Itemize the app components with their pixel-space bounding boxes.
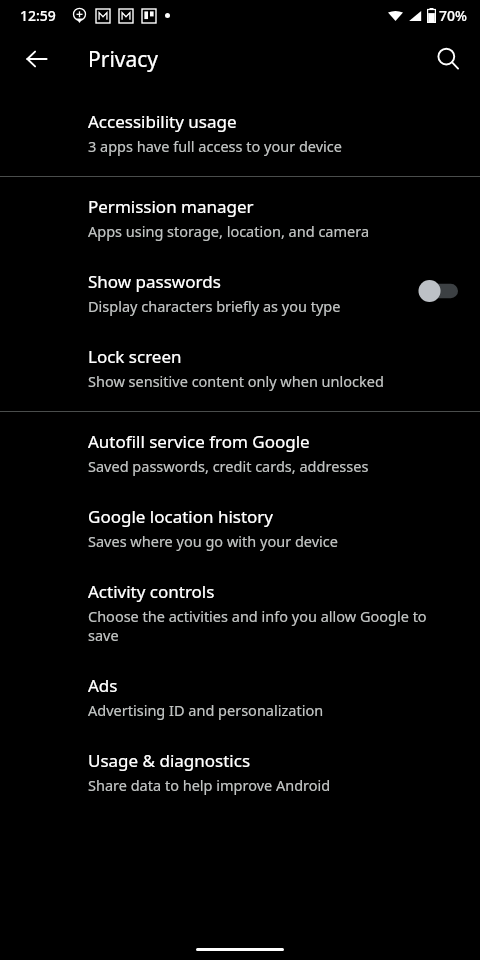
button[interactable]: Permission manager — [0, 195, 480, 241]
staticText: Apps using storage, location, and camera — [88, 221, 370, 241]
button[interactable]: Google location history — [0, 505, 480, 551]
staticText: Display characters briefly as you type — [88, 296, 341, 316]
button[interactable]: Lock screen — [0, 345, 480, 391]
staticText: Ads — [88, 674, 118, 697]
staticText: Activity controls — [88, 580, 215, 603]
button[interactable]: Show passwords toggle — [418, 279, 458, 303]
staticText: 3 apps have full access to your device — [88, 136, 342, 156]
button[interactable]: Show passwords — [0, 270, 480, 316]
staticText: Saves where you go with your device — [88, 531, 338, 551]
staticText: Show sensitive content only when unlocke… — [88, 371, 384, 391]
button[interactable]: Search — [424, 35, 472, 83]
button[interactable]: Usage & diagnostics — [0, 749, 480, 795]
staticText: Advertising ID and personalization — [88, 700, 324, 720]
staticText: Usage & diagnostics — [88, 749, 251, 772]
button[interactable]: Accessibility usage — [0, 110, 480, 156]
staticText: Saved passwords, credit cards, addresses — [88, 456, 369, 476]
staticText: Accessibility usage — [88, 110, 237, 133]
button[interactable]: Autofill service from Google — [0, 430, 480, 476]
button[interactable]: Ads — [0, 674, 480, 720]
staticText: Google location history — [88, 505, 274, 528]
staticText: Share data to help improve Android — [88, 775, 331, 795]
button[interactable]: Activity controls — [0, 580, 480, 645]
staticText: Privacy — [88, 45, 159, 74]
button[interactable]: Back — [13, 35, 61, 83]
staticText: Permission manager — [88, 195, 254, 218]
staticText: 70% — [439, 6, 467, 25]
staticText: Show passwords — [88, 270, 221, 293]
staticText: 12:59 — [20, 6, 56, 25]
staticText: Autofill service from Google — [88, 430, 310, 453]
staticText: Lock screen — [88, 345, 182, 368]
staticText: Choose the activities and info you allow… — [88, 606, 458, 645]
